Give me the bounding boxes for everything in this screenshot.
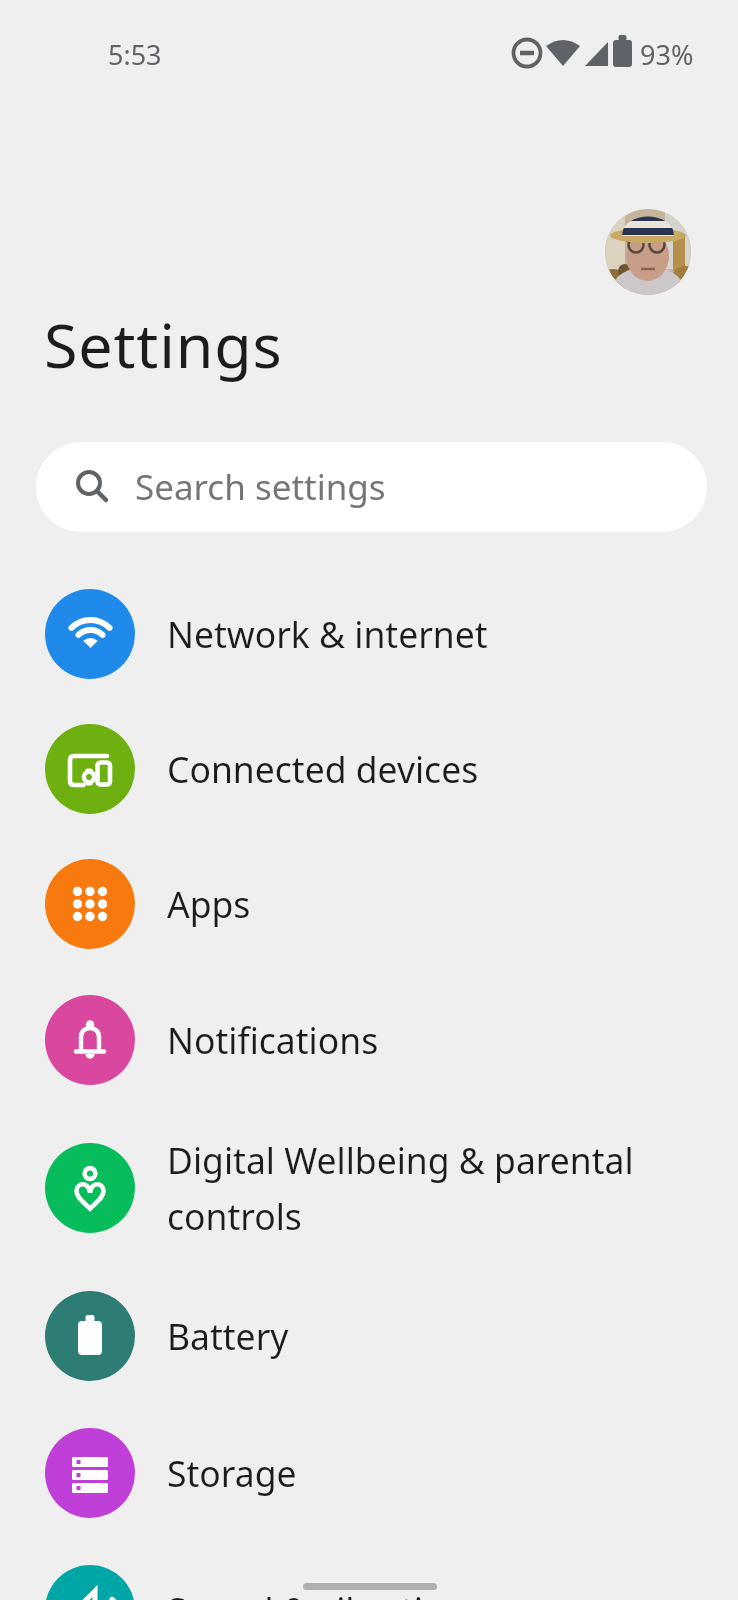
staticText: Battery (167, 1312, 289, 1360)
staticText: Connected devices (167, 745, 479, 793)
button[interactable]: Storage (0, 1405, 738, 1540)
staticText: Storage (167, 1449, 297, 1497)
staticText: 5:53 (108, 36, 162, 73)
button[interactable]: Notifications (0, 972, 738, 1107)
button[interactable]: Connected devices (0, 701, 738, 836)
staticText: Search settings (135, 463, 386, 511)
button[interactable]: Sound & vibration (0, 1542, 738, 1600)
staticText: Apps (167, 880, 251, 928)
button[interactable]: Network & internet (0, 566, 738, 701)
button[interactable]: Battery (0, 1268, 738, 1403)
button[interactable]: Apps (0, 836, 738, 971)
button[interactable]: Digital Wellbeing & parental controls (0, 1107, 738, 1268)
staticText: 93% (640, 36, 694, 73)
button[interactable] (605, 209, 691, 295)
staticText: Notifications (167, 1016, 379, 1064)
staticText: Network & internet (167, 610, 488, 658)
staticText: Sound & vibration (167, 1586, 467, 1600)
button[interactable]: Search settings (36, 442, 707, 532)
staticText: Settings (44, 303, 283, 386)
staticText: Digital Wellbeing & parental controls (167, 1136, 634, 1240)
